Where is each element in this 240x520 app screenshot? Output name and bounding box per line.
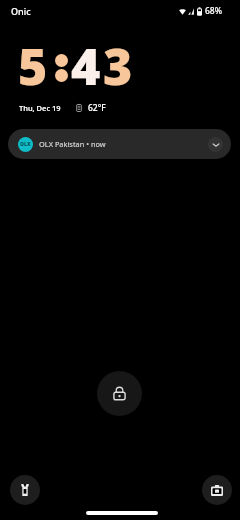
staticText: 62°F: [88, 102, 106, 114]
staticText: 5: [18, 32, 51, 100]
staticText: 4: [71, 32, 104, 100]
button[interactable]: Camera: [202, 475, 232, 505]
staticText: Thu, Dec 19: [19, 103, 61, 113]
staticText: Onic: [11, 5, 31, 17]
staticText: OLX: [20, 141, 31, 148]
button[interactable]: Expand notification: [208, 137, 223, 152]
button[interactable]: Device locked: [97, 371, 142, 416]
staticText: 68%: [205, 5, 222, 17]
staticText: 3: [103, 32, 136, 100]
staticText: OLX Pakistan • now: [39, 139, 106, 149]
button[interactable]: OLX: [8, 129, 231, 159]
button[interactable]: Flashlight: [10, 475, 40, 505]
